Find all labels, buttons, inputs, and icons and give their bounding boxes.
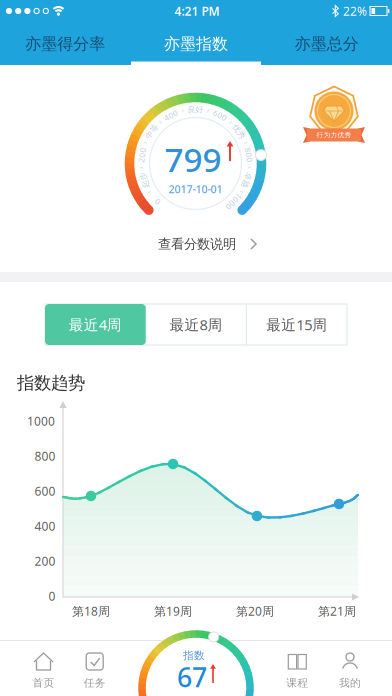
staticText: 亦墨指数 xyxy=(164,34,228,54)
button[interactable] xyxy=(60,640,130,695)
staticText: 卓越 xyxy=(239,175,255,185)
staticText: 最近4周 xyxy=(69,315,122,334)
staticText: 600 xyxy=(34,483,55,499)
staticText: 200 xyxy=(135,150,150,160)
staticText: 799 xyxy=(164,137,221,181)
staticText: 起步 xyxy=(136,175,152,185)
staticText: 查看分数说明 xyxy=(158,236,236,252)
button[interactable]: 最近8周 xyxy=(146,304,246,345)
button[interactable] xyxy=(125,230,275,258)
staticText: 1000 xyxy=(224,196,244,207)
staticText: 中等 xyxy=(144,127,160,137)
button[interactable]: 最近15周 xyxy=(246,304,347,345)
staticText: 我的 xyxy=(339,676,361,689)
staticText: 优秀 xyxy=(231,127,247,137)
button[interactable]: 亦墨指数 xyxy=(131,24,261,64)
staticText: 指数趋势 xyxy=(17,372,85,394)
staticText: 800 xyxy=(241,150,256,160)
staticText: 良好 xyxy=(187,105,203,114)
button[interactable] xyxy=(262,640,332,695)
staticText: 最近8周 xyxy=(169,315,222,334)
staticText: 800 xyxy=(34,448,55,464)
button[interactable]: 亦墨得分率 xyxy=(0,24,130,64)
staticText: 400 xyxy=(34,518,55,534)
staticText: 200 xyxy=(34,553,55,569)
button[interactable]: 最近4周 xyxy=(45,304,146,345)
staticText: 1000 xyxy=(27,413,55,429)
staticText: 第21周 xyxy=(318,603,356,619)
staticText: 第20周 xyxy=(236,603,274,619)
staticText: 行为力优秀 xyxy=(316,131,351,139)
staticText: 任务 xyxy=(84,676,106,689)
staticText: 0 xyxy=(48,588,55,604)
staticText: 指数 xyxy=(183,649,205,662)
staticText: 第18周 xyxy=(72,603,110,619)
staticText: 600 xyxy=(212,110,227,121)
staticText: 2017-10-01 xyxy=(168,182,222,196)
staticText: 最近15周 xyxy=(266,315,327,334)
staticText: 22% xyxy=(343,3,367,19)
staticText: 67 xyxy=(177,659,207,695)
button[interactable]: 亦墨总分 xyxy=(262,24,392,64)
staticText: 第19周 xyxy=(154,603,192,619)
staticText: 首页 xyxy=(32,676,54,689)
staticText: 亦墨总分 xyxy=(295,34,359,54)
staticText: 课程 xyxy=(286,676,308,689)
staticText: 400 xyxy=(163,110,178,121)
staticText: 4:21 PM xyxy=(174,3,219,19)
staticText: 0 xyxy=(155,196,160,207)
button[interactable] xyxy=(315,640,385,695)
button[interactable] xyxy=(8,640,78,695)
staticText: 亦墨得分率 xyxy=(25,34,105,54)
button[interactable] xyxy=(138,630,254,696)
